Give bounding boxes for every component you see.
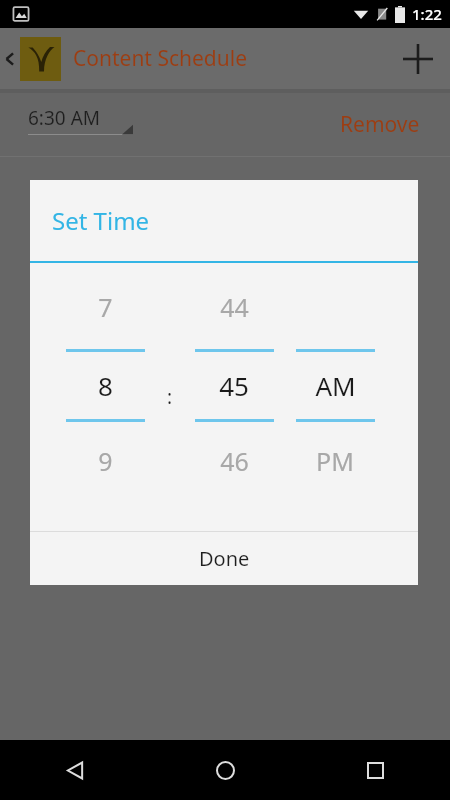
staticText: 8 (98, 368, 113, 403)
button[interactable]: Done (30, 532, 418, 585)
staticText: 46 (220, 444, 249, 478)
staticText: Content Schedule (73, 44, 392, 73)
staticText: 7 (98, 290, 113, 324)
button[interactable]: 9 (54, 436, 156, 486)
button[interactable]: Remove (330, 104, 430, 145)
button[interactable]: 6:30 AM (28, 105, 133, 145)
staticText: 6:30 AM (28, 105, 101, 131)
button[interactable]: 45 (184, 352, 284, 419)
button[interactable]: 46 (184, 436, 284, 486)
button[interactable]: Add (392, 33, 444, 85)
button[interactable]: 8 (54, 352, 156, 419)
staticText: 1:22 (412, 4, 442, 24)
button[interactable]: App logo (20, 37, 61, 81)
staticText: Set Time (52, 204, 150, 237)
staticText: Remove (340, 110, 420, 139)
staticText: PM (316, 444, 354, 478)
button[interactable]: Home (150, 740, 300, 800)
button[interactable]: Back (0, 28, 20, 89)
staticText: Done (199, 545, 250, 572)
button[interactable]: 7 (54, 279, 156, 335)
button[interactable]: AM (284, 352, 386, 419)
staticText: 44 (220, 290, 249, 324)
button[interactable]: 44 (184, 279, 284, 335)
button[interactable]: PM (284, 436, 386, 486)
staticText: 45 (219, 368, 249, 403)
button[interactable]: Recent apps (300, 740, 450, 800)
staticText: AM (315, 368, 356, 403)
staticText: 9 (98, 444, 113, 478)
button[interactable]: Back (0, 740, 150, 800)
staticText: : (167, 384, 173, 410)
